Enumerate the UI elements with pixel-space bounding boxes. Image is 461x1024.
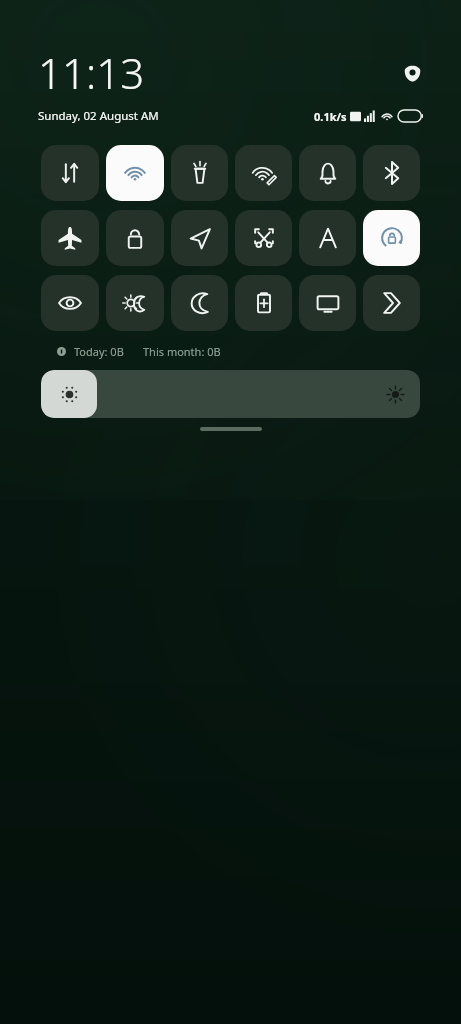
button[interactable]: PLANE [41,210,99,266]
button[interactable]: WIFI [106,145,164,201]
button[interactable]: MOON [171,275,228,331]
button[interactable]: LOCK [106,210,164,266]
staticText: This month: 0B [143,344,221,359]
button[interactable]: FONT [299,210,356,266]
button[interactable]: DATA [41,145,99,201]
button[interactable]: BELL [299,145,356,201]
button[interactable]: ROTATE [363,210,420,266]
button[interactable]: SUNMOON [106,275,164,331]
button[interactable]: EYE [41,275,99,331]
button[interactable]: CAST [299,275,356,331]
button[interactable]: HOTSPOT [235,145,292,201]
button[interactable]: BT [363,145,420,201]
staticText: Today: 0B [74,344,124,359]
staticText: 11:13 [38,44,145,101]
staticText: 0.1k/s [314,109,347,124]
button[interactable]: LOCATION [171,210,228,266]
button[interactable]: BATTERY [235,275,292,331]
button[interactable]: SCREENSHOT [235,210,292,266]
button[interactable]: Brightness [41,370,420,418]
button[interactable]: TORCH [171,145,228,201]
button[interactable]: Security [401,62,423,84]
staticText: Sunday, 02 August AM [38,108,159,124]
button[interactable]: SHARE [363,275,420,331]
